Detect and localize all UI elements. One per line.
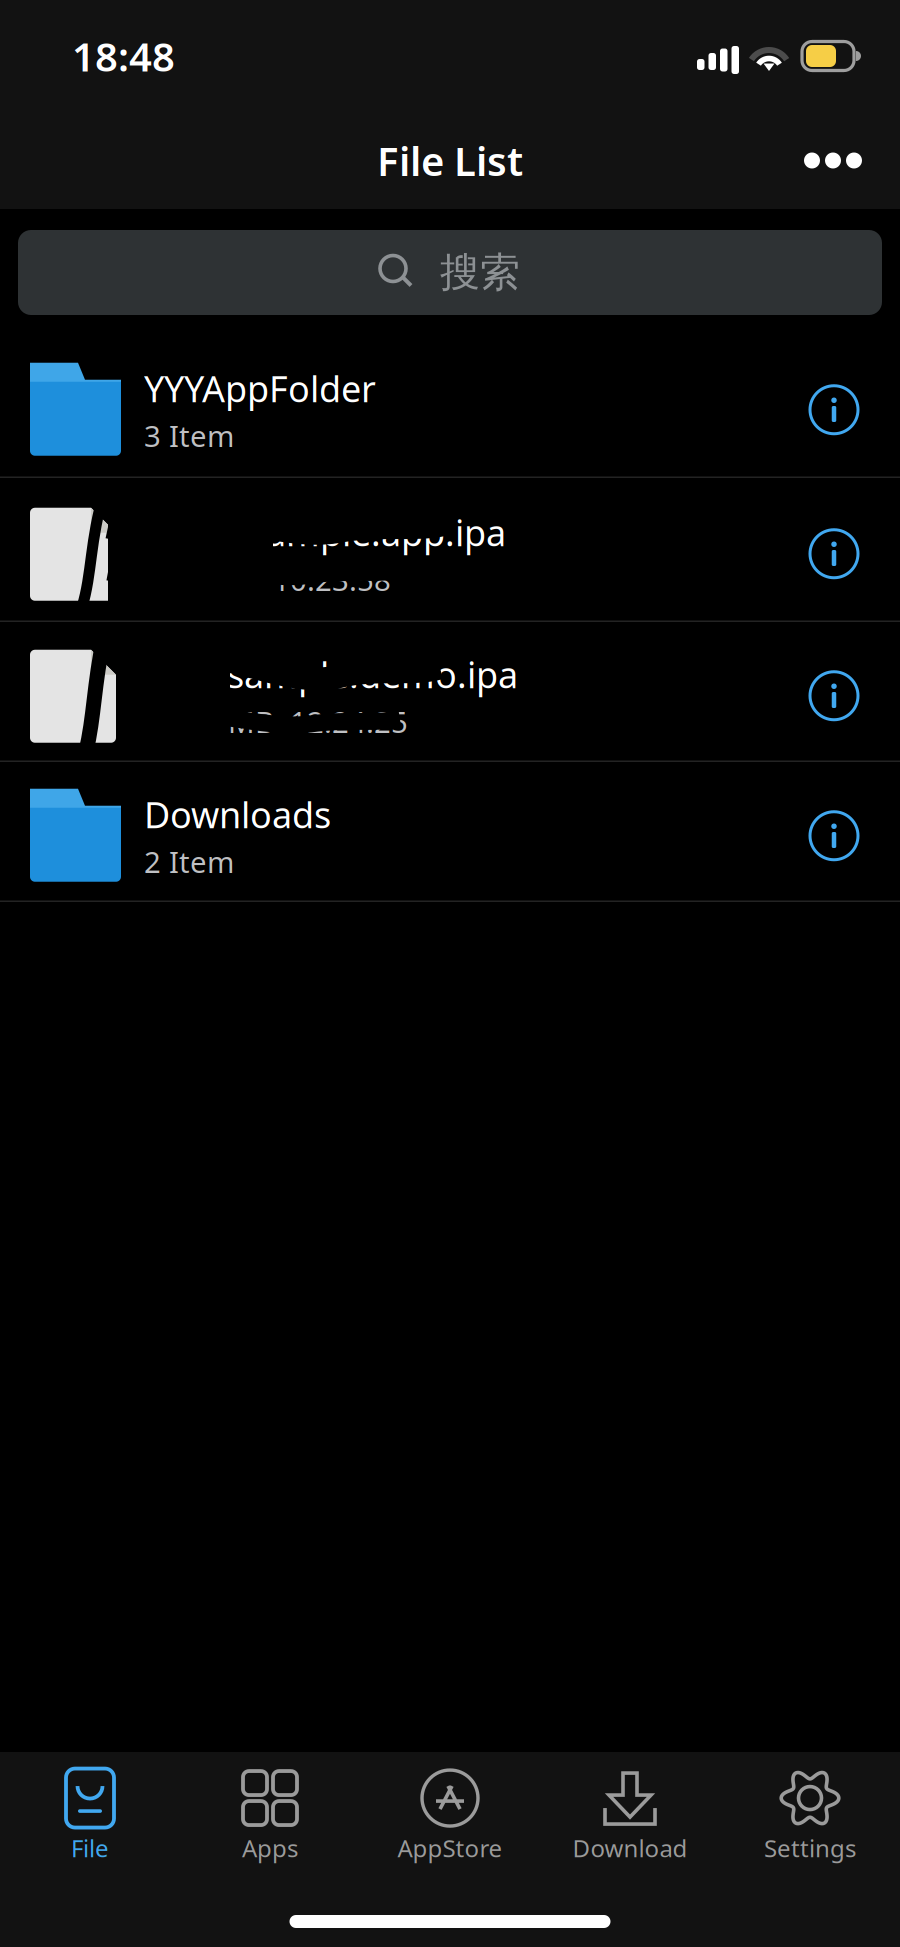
staticText: 2 Item [144, 842, 234, 881]
button[interactable]: File [0, 1762, 180, 1870]
staticText: Downloads [144, 790, 331, 838]
staticText: File [71, 1832, 109, 1864]
button[interactable]: More options [778, 117, 888, 203]
button[interactable]: Downloads [0, 762, 900, 900]
staticText: 搜索 [440, 248, 520, 297]
staticText: Apps [242, 1832, 298, 1864]
staticText: com.sample.demo.ipa [144, 650, 518, 698]
button[interactable]: Download [540, 1762, 720, 1870]
button[interactable]: Apps [180, 1762, 360, 1870]
staticText: Download [572, 1832, 687, 1864]
staticText: 3 Item [144, 416, 234, 455]
button[interactable]: Settings [720, 1762, 900, 1870]
staticText: Settings [764, 1832, 856, 1864]
staticText: com.example.app.ipa [144, 508, 506, 556]
button[interactable]: AppStore [360, 1762, 540, 1870]
staticText: AppStore [397, 1832, 502, 1864]
staticText: File List [377, 134, 523, 187]
button[interactable]: com.sample.demo.ipa [0, 622, 900, 760]
staticText: YYYAppFolder [144, 364, 376, 412]
button[interactable]: YYYAppFolder [0, 334, 900, 476]
staticText: 13.02 MB 12:24:25 [144, 702, 408, 741]
button[interactable]: com.example.app.ipa [0, 478, 900, 620]
staticText: 18.4 MB 10:23:58 [144, 560, 391, 599]
staticText: 18:48 [72, 29, 175, 82]
button[interactable]: 搜索 [18, 230, 882, 315]
